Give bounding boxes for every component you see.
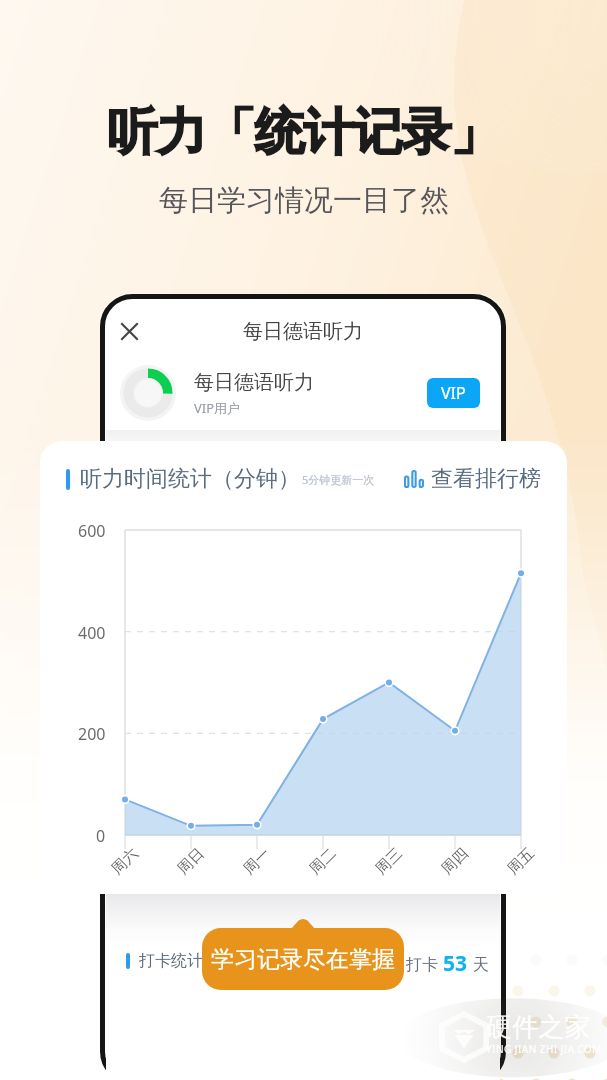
- staticText: 硬件之家: [486, 1011, 591, 1044]
- button[interactable]: Close: [111, 313, 147, 349]
- staticText: 周五: [504, 844, 538, 879]
- staticText: VIP: [441, 382, 466, 404]
- staticText: 天: [473, 955, 489, 975]
- staticText: 学习记录尽在掌握: [211, 945, 395, 974]
- button[interactable]: 每日德语听力: [106, 356, 500, 430]
- staticText: 查看排行榜: [431, 465, 541, 493]
- staticText: 每日德语听力: [194, 370, 314, 395]
- button[interactable]: 学习记录尽在掌握: [202, 919, 404, 990]
- staticText: 周日: [174, 844, 208, 879]
- staticText: 600: [78, 520, 106, 542]
- staticText: YING JIAN ZHI JIA.COM: [486, 1042, 602, 1056]
- staticText: 打卡统计: [139, 951, 203, 971]
- staticText: VIP用户: [194, 399, 241, 417]
- staticText: 听力时间统计（分钟）: [80, 465, 300, 493]
- staticText: 周四: [438, 844, 472, 879]
- staticText: 200: [78, 723, 106, 745]
- button[interactable]: VIP: [427, 378, 480, 408]
- button[interactable]: 打卡统计: [126, 951, 203, 971]
- staticText: 400: [78, 622, 106, 644]
- staticText: 5分钟更新一次: [302, 472, 375, 487]
- staticText: 周二: [306, 844, 340, 879]
- staticText: 听力「统计记录」: [108, 101, 500, 164]
- button[interactable]: 查看排行榜: [404, 465, 541, 493]
- staticText: 0: [96, 825, 106, 847]
- staticText: 周一: [240, 844, 274, 879]
- staticText: 每日学习情况一目了然: [159, 182, 449, 219]
- staticText: 打卡: [406, 955, 438, 975]
- staticText: 周六: [108, 844, 142, 879]
- staticText: 每日德语听力: [243, 319, 363, 344]
- staticText: 53: [443, 949, 468, 978]
- staticText: 周三: [372, 844, 406, 879]
